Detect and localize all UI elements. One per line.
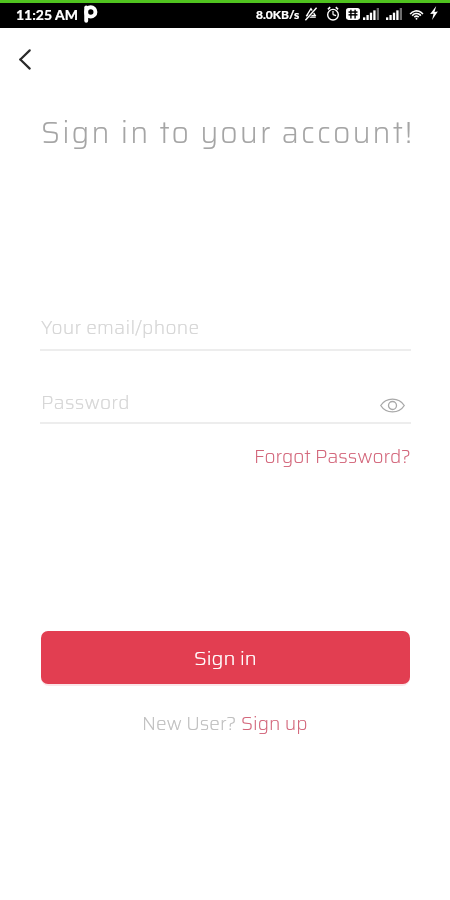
staticText: Your email/phone — [41, 312, 200, 342]
button[interactable]: Forgot Password? — [247, 436, 418, 476]
staticText: Sign in — [194, 642, 257, 673]
button[interactable]: Sign up — [241, 708, 308, 738]
staticText: New User? — [142, 708, 241, 738]
staticText: Password — [41, 387, 130, 417]
staticText: Sign in to your account! — [41, 109, 414, 156]
button[interactable]: Sign in — [41, 631, 410, 684]
button[interactable]: Back — [0, 35, 47, 83]
staticText: 8.0KB/s — [256, 7, 300, 21]
button[interactable]: Show password — [376, 389, 408, 421]
staticText: 11:25 AM — [16, 6, 78, 23]
staticText: Forgot Password? — [254, 441, 411, 471]
